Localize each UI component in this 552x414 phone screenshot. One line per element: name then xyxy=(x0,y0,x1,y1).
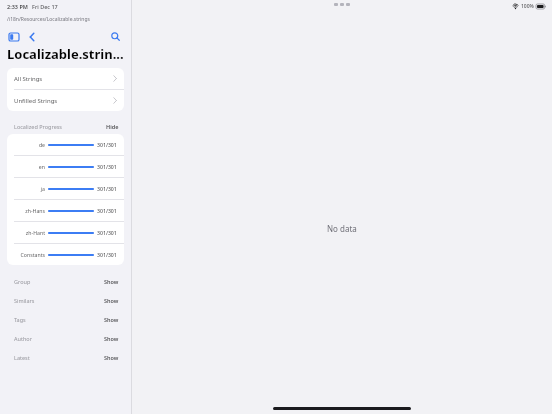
button[interactable]: Unfilled Strings xyxy=(7,90,124,111)
staticText: 301/301 xyxy=(97,163,117,170)
staticText: Show xyxy=(104,354,119,361)
staticText: de xyxy=(38,141,45,148)
staticText: Fri Dec 17 xyxy=(32,3,58,10)
staticText: Hide xyxy=(106,123,119,130)
staticText: ja xyxy=(40,185,45,192)
staticText: Constants xyxy=(20,251,45,258)
button[interactable]: Latest xyxy=(0,348,131,367)
button[interactable]: Constants xyxy=(7,244,124,265)
staticText: 301/301 xyxy=(97,141,117,148)
staticText: Localizable.strin... xyxy=(7,45,124,63)
staticText: 301/301 xyxy=(97,185,117,192)
staticText: /i18n/Resources/Localizable.strings xyxy=(7,16,90,23)
staticText: en xyxy=(38,163,45,170)
button[interactable]: de xyxy=(7,134,124,155)
staticText: Localized Progress xyxy=(14,123,63,130)
button[interactable]: Toggle sidebar xyxy=(7,30,20,43)
staticText: Show xyxy=(104,297,119,304)
button[interactable]: zh-Hant xyxy=(7,222,124,243)
staticText: 301/301 xyxy=(97,207,117,214)
button[interactable]: ja xyxy=(7,178,124,199)
button[interactable]: en xyxy=(7,156,124,177)
staticText: Tags xyxy=(14,316,26,323)
staticText: Author xyxy=(14,335,32,342)
staticText: zh-Hans xyxy=(25,207,45,214)
button[interactable]: Search xyxy=(109,30,122,43)
staticText: Latest xyxy=(14,354,30,361)
button[interactable]: Back xyxy=(25,30,38,43)
button[interactable]: Hide xyxy=(106,123,119,130)
staticText: Show xyxy=(104,278,119,285)
staticText: All Strings xyxy=(14,75,43,83)
staticText: 100% xyxy=(521,3,534,10)
staticText: Show xyxy=(104,316,119,323)
staticText: 301/301 xyxy=(97,251,117,258)
button[interactable]: Multitasking controls xyxy=(334,3,350,6)
button[interactable]: All Strings xyxy=(7,68,124,89)
staticText: No data xyxy=(327,223,357,234)
staticText: zh-Hant xyxy=(25,229,45,236)
staticText: Similars xyxy=(14,297,35,304)
staticText: Group xyxy=(14,278,31,285)
staticText: 301/301 xyxy=(97,229,117,236)
button[interactable]: Similars xyxy=(0,291,131,310)
button[interactable]: Tags xyxy=(0,310,131,329)
staticText: 2:33 PM xyxy=(7,3,28,10)
button[interactable]: zh-Hans xyxy=(7,200,124,221)
button[interactable]: Author xyxy=(0,329,131,348)
staticText: Show xyxy=(104,335,119,342)
staticText: Unfilled Strings xyxy=(14,97,58,105)
button[interactable]: Group xyxy=(0,272,131,291)
